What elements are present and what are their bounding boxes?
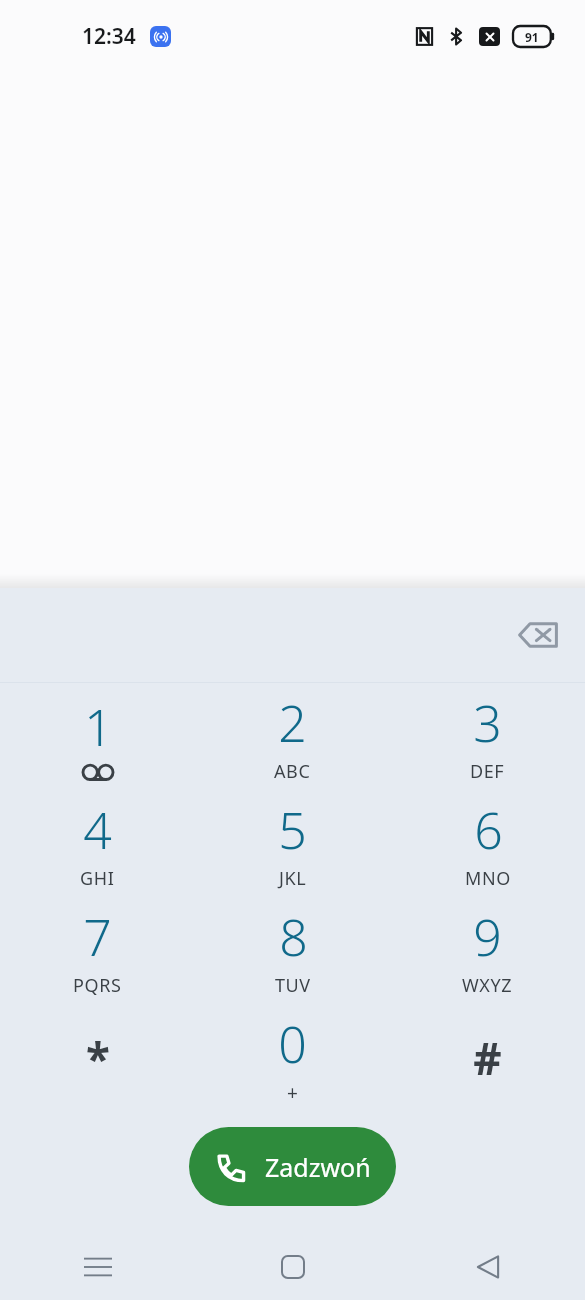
staticText: WXYZ: [462, 973, 513, 998]
button[interactable]: 0: [195, 1004, 390, 1111]
staticText: 3: [473, 689, 502, 757]
staticText: MNO: [465, 866, 511, 891]
staticText: PQRS: [73, 973, 122, 998]
staticText: 91: [525, 29, 539, 45]
staticText: 1: [84, 693, 113, 761]
button[interactable]: Home: [195, 1234, 390, 1300]
button[interactable]: Backspace: [505, 602, 571, 668]
button[interactable]: *: [0, 1004, 195, 1111]
button[interactable]: Back: [390, 1234, 585, 1300]
staticText: ABC: [274, 759, 311, 784]
button[interactable]: Recent apps: [0, 1234, 195, 1300]
button[interactable]: Zadzwoń: [189, 1127, 396, 1206]
button[interactable]: 6: [390, 790, 585, 897]
staticText: #: [473, 1028, 502, 1088]
staticText: *: [86, 1028, 110, 1088]
button[interactable]: #: [390, 1004, 585, 1111]
staticText: 8: [279, 903, 308, 971]
button[interactable]: 5: [195, 790, 390, 897]
button[interactable]: 8: [195, 897, 390, 1004]
button[interactable]: 4: [0, 790, 195, 897]
staticText: Zadzwoń: [265, 1150, 371, 1184]
button[interactable]: 1: [0, 683, 195, 790]
staticText: JKL: [279, 866, 307, 891]
staticText: TUV: [275, 973, 311, 998]
staticText: 5: [278, 796, 307, 864]
staticText: GHI: [80, 866, 115, 891]
button[interactable]: 2: [195, 683, 390, 790]
staticText: 7: [83, 903, 112, 971]
staticText: 6: [474, 796, 503, 864]
staticText: 12:34: [82, 22, 136, 51]
button[interactable]: 9: [390, 897, 585, 1004]
staticText: 2: [278, 689, 307, 757]
staticText: 4: [83, 796, 112, 864]
staticText: DEF: [470, 759, 505, 784]
staticText: 0: [278, 1010, 307, 1078]
button[interactable]: 7: [0, 897, 195, 1004]
button[interactable]: 3: [390, 683, 585, 790]
staticText: +: [287, 1080, 298, 1106]
staticText: 9: [473, 903, 502, 971]
